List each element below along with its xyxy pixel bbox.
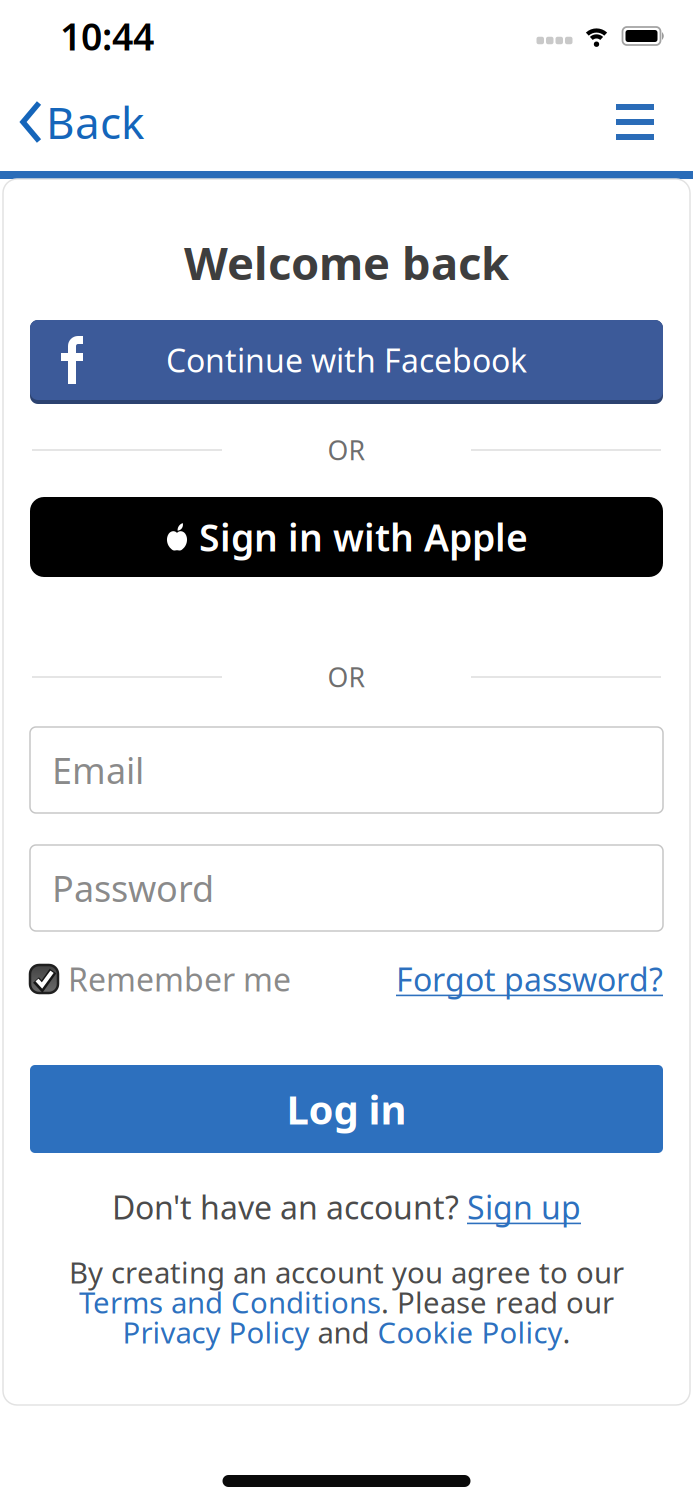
staticText: Welcome back [184,232,509,293]
button[interactable]: Back [0,93,144,151]
button[interactable]: Sign in with Apple [30,497,663,577]
staticText: Log in [286,1082,406,1135]
staticText: Cookie Policy [377,1312,562,1351]
button[interactable]: Password [30,845,663,931]
button[interactable]: Privacy Policy [122,1312,309,1351]
button[interactable]: Log in [30,1065,663,1153]
staticText: OR [327,659,365,695]
staticText: By creating an account you agree to our [69,1252,624,1291]
button[interactable]: Cookie Policy [377,1312,562,1351]
staticText: Don't have an account? [112,1186,467,1228]
button[interactable]: Forgot password? [396,958,663,1000]
staticText: . [562,1312,570,1351]
button[interactable]: Menu [616,104,693,140]
staticText: 10:44 [60,11,154,61]
staticText: and [309,1312,377,1351]
staticText: Sign in with Apple [199,512,528,562]
staticText: Forgot password? [396,958,663,1000]
staticText: Continue with Facebook [166,339,527,381]
button[interactable]: Email [30,727,663,813]
staticText: Email [52,746,144,794]
button[interactable]: Sign up [467,1186,581,1228]
staticText: . Please read our [381,1282,614,1321]
staticText: Remember me [68,958,291,1000]
staticText: Back [46,93,144,151]
button[interactable]: Terms and Conditions [79,1282,381,1321]
staticText: OR [327,432,365,468]
staticText: Sign up [467,1186,581,1228]
staticText: Terms and Conditions [79,1282,381,1321]
button[interactable]: Remember me [30,958,291,1000]
staticText: Privacy Policy [122,1312,309,1351]
staticText: Password [52,864,214,912]
button[interactable]: Continue with Facebook [30,320,663,404]
